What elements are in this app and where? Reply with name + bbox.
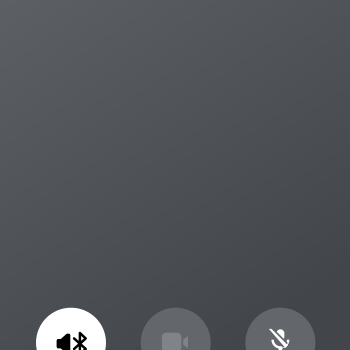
button[interactable]: Audio output: Bluetooth <box>36 308 106 350</box>
button[interactable]: Mute <box>245 308 315 350</box>
button[interactable]: Video <box>141 308 211 350</box>
